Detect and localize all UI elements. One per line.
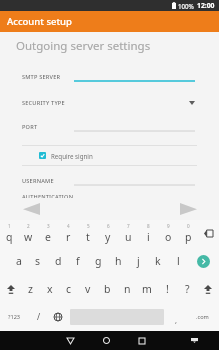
staticText: 12:00 xyxy=(197,1,215,10)
staticText: e xyxy=(45,230,51,244)
staticText: n xyxy=(124,282,131,296)
button[interactable]: s xyxy=(28,247,48,275)
button[interactable]: 2 xyxy=(19,220,38,247)
staticText: 1 xyxy=(8,223,11,229)
button[interactable]: 5 xyxy=(78,220,98,247)
staticText: g xyxy=(95,254,102,268)
button[interactable]: , xyxy=(167,303,186,331)
button[interactable]: Back xyxy=(52,331,88,350)
staticText: SECURITY TYPE xyxy=(22,99,65,107)
staticText: k xyxy=(155,254,161,268)
button[interactable]: Home xyxy=(88,331,124,350)
button[interactable]: Enter xyxy=(188,247,219,275)
staticText: b xyxy=(104,282,111,296)
staticText: s xyxy=(35,254,41,268)
staticText: , xyxy=(175,315,178,325)
staticText: t xyxy=(86,230,90,244)
button[interactable]: 6 xyxy=(98,220,118,247)
button[interactable]: m xyxy=(137,275,157,303)
button[interactable]: j xyxy=(128,247,148,275)
button[interactable]: 0 xyxy=(178,220,198,247)
staticText: 5 xyxy=(87,223,90,229)
button[interactable]: Next xyxy=(177,200,199,218)
staticText: 0 xyxy=(187,223,190,229)
staticText: d xyxy=(55,254,62,268)
button[interactable]: d xyxy=(48,247,68,275)
staticText: c xyxy=(66,282,72,296)
staticText: y xyxy=(105,230,111,244)
button[interactable]: 1 xyxy=(0,220,19,247)
staticText: j xyxy=(137,254,140,268)
staticText: 7 xyxy=(127,223,130,229)
button[interactable]: SECURITY TYPE xyxy=(0,93,219,112)
button[interactable]: USERNAME xyxy=(0,170,219,191)
button[interactable]: l xyxy=(168,247,188,275)
button[interactable]: Shift xyxy=(0,275,21,303)
staticText: 100% xyxy=(178,2,194,10)
staticText: .com xyxy=(196,313,209,321)
button[interactable]: PORT xyxy=(0,116,219,137)
button[interactable]: Require signin xyxy=(0,146,219,165)
staticText: USERNAME xyxy=(22,177,54,185)
button[interactable]: 3 xyxy=(38,220,58,247)
staticText: l xyxy=(177,254,180,268)
button[interactable]: g xyxy=(88,247,108,275)
staticText: AUTHENTICATION xyxy=(22,193,74,198)
button[interactable]: .com xyxy=(186,303,219,331)
staticText: m xyxy=(142,282,152,296)
button[interactable]: a xyxy=(9,247,28,275)
staticText: ? xyxy=(185,282,190,296)
button[interactable]: AUTHENTICATION xyxy=(0,193,219,198)
button[interactable]: Shift xyxy=(197,275,219,303)
button[interactable]: x xyxy=(40,275,59,303)
staticText: 6 xyxy=(107,223,110,229)
button[interactable]: f xyxy=(68,247,88,275)
staticText: SMTP SERVER xyxy=(22,73,61,81)
button[interactable]: b xyxy=(97,275,117,303)
staticText: p xyxy=(185,230,192,244)
staticText: 9 xyxy=(167,223,170,229)
staticText: w xyxy=(24,230,33,244)
button[interactable]: ! xyxy=(157,275,177,303)
staticText: Require signin xyxy=(51,152,93,160)
staticText: f xyxy=(76,254,80,268)
staticText: q xyxy=(6,230,13,244)
staticText: i xyxy=(147,230,150,244)
button[interactable]: Hide keyboard xyxy=(176,331,212,350)
button[interactable]: Account setup xyxy=(0,11,219,32)
staticText: r xyxy=(66,230,71,244)
staticText: u xyxy=(125,230,132,244)
button[interactable]: SMTP SERVER xyxy=(0,66,219,87)
button[interactable]: n xyxy=(117,275,137,303)
button[interactable]: Change language xyxy=(48,303,67,331)
button[interactable]: Backspace xyxy=(198,220,219,247)
staticText: 2 xyxy=(27,223,30,229)
button[interactable]: k xyxy=(148,247,168,275)
button[interactable]: / xyxy=(29,303,48,331)
staticText: v xyxy=(85,282,91,296)
button[interactable]: v xyxy=(78,275,97,303)
staticText: z xyxy=(28,282,33,296)
staticText: Outgoing server settings xyxy=(16,38,151,54)
button[interactable]: h xyxy=(108,247,128,275)
staticText: h xyxy=(115,254,122,268)
staticText: a xyxy=(16,254,22,268)
button[interactable]: 8 xyxy=(138,220,158,247)
staticText: 4 xyxy=(67,223,70,229)
button[interactable]: Previous xyxy=(20,200,42,218)
button[interactable]: Recent apps xyxy=(124,331,160,350)
button[interactable]: c xyxy=(59,275,78,303)
staticText: / xyxy=(37,311,41,323)
button[interactable]: 7 xyxy=(118,220,138,247)
button[interactable]: 9 xyxy=(158,220,178,247)
staticText: ?123 xyxy=(8,313,21,321)
button[interactable]: ?123 xyxy=(0,303,29,331)
button[interactable]: z xyxy=(21,275,40,303)
other: Expand security type xyxy=(189,101,195,105)
staticText: 8 xyxy=(147,223,150,229)
staticText: ! xyxy=(166,282,169,296)
button[interactable]: 4 xyxy=(58,220,78,247)
button[interactable]: ? xyxy=(177,275,197,303)
staticText: x xyxy=(47,282,53,296)
